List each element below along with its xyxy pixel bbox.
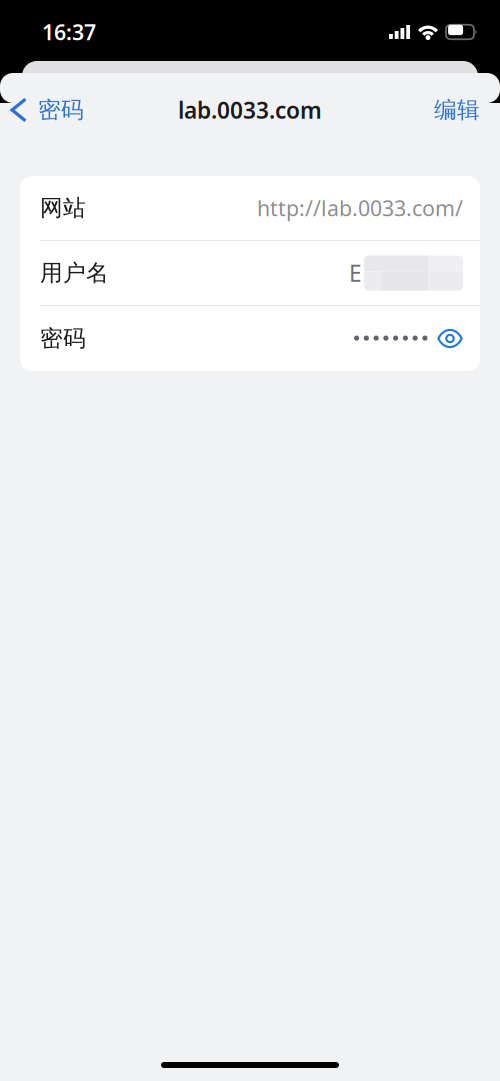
staticText: http://lab.0033.com/	[257, 194, 463, 222]
staticText: 密码	[38, 96, 84, 124]
staticText: lab.0033.com	[178, 95, 322, 125]
button[interactable]: 编辑	[434, 88, 500, 132]
button[interactable]: 密码	[20, 306, 480, 371]
button[interactable]: 网站	[20, 176, 480, 240]
staticText: 网站	[40, 194, 86, 222]
staticText: 编辑	[434, 96, 480, 124]
staticText: 用户名	[40, 259, 109, 287]
button[interactable]: 密码	[0, 88, 84, 132]
staticText: E	[349, 258, 362, 288]
staticText: 密码	[40, 325, 86, 352]
staticText: 16:37	[42, 18, 96, 46]
button[interactable]: Show password	[437, 329, 463, 348]
button[interactable]: 用户名	[20, 241, 480, 305]
